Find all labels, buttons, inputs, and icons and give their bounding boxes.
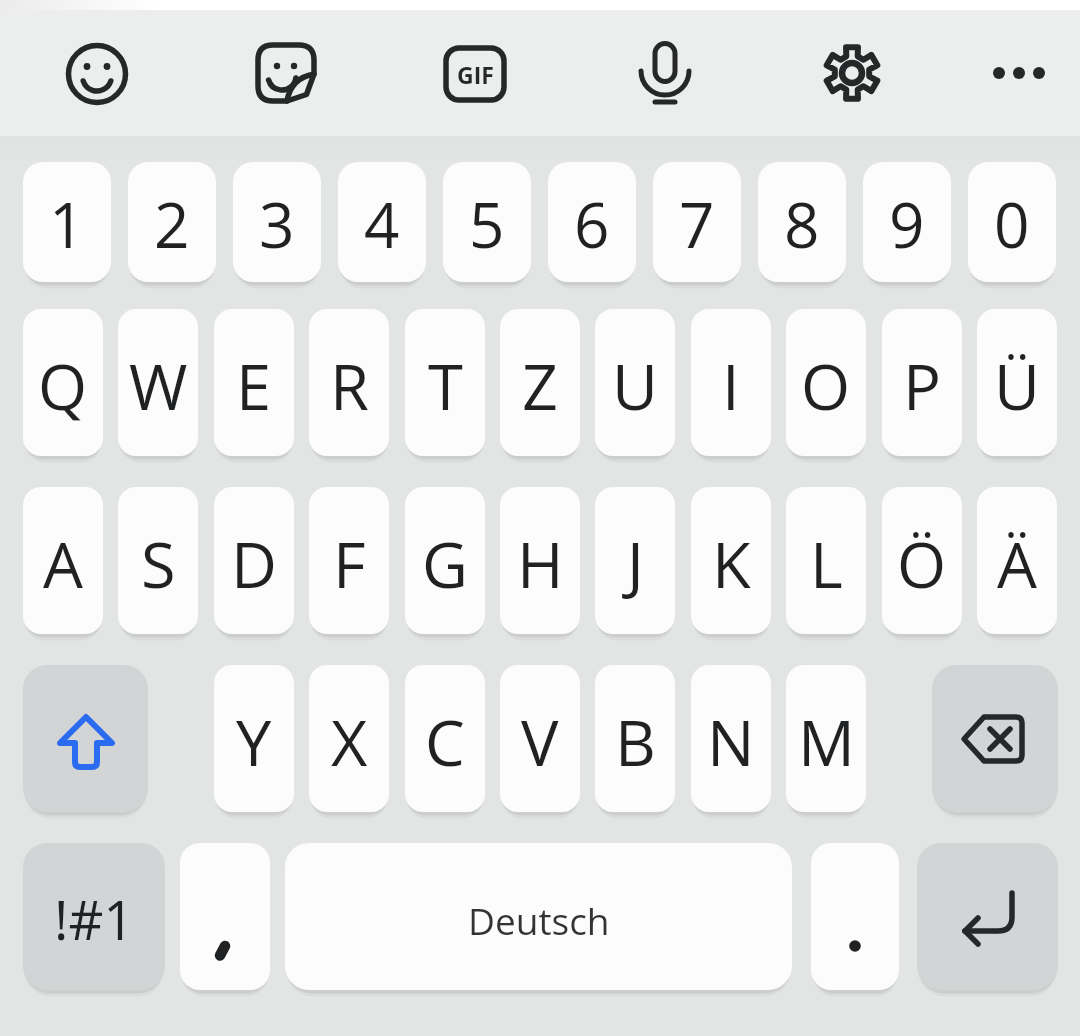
staticText: G (422, 521, 468, 607)
button[interactable] (811, 843, 899, 990)
button[interactable]: B (595, 665, 675, 812)
staticText: C (425, 699, 465, 785)
staticText: 0 (994, 182, 1030, 266)
button[interactable]: G (405, 487, 485, 634)
staticText: D (231, 521, 277, 607)
button[interactable]: Y (214, 665, 294, 812)
staticText: B (615, 699, 656, 785)
button[interactable]: H (500, 487, 580, 634)
button[interactable]: R (309, 309, 389, 456)
button[interactable]: C (405, 665, 485, 812)
button[interactable]: W (118, 309, 198, 456)
staticText: O (801, 343, 851, 429)
staticText: 1 (49, 182, 85, 266)
staticText: 9 (889, 182, 925, 266)
button[interactable]: 8 (758, 162, 846, 282)
button[interactable] (932, 665, 1058, 812)
staticText: L (810, 521, 843, 607)
button[interactable]: GIF (443, 45, 507, 103)
button[interactable] (23, 665, 148, 812)
button[interactable]: !#1 (23, 843, 165, 990)
button[interactable]: E (214, 309, 294, 456)
button[interactable] (820, 41, 884, 105)
staticText: P (903, 343, 941, 429)
staticText: T (428, 343, 463, 429)
staticText: H (517, 521, 564, 607)
button[interactable]: 9 (863, 162, 951, 282)
button[interactable] (987, 41, 1051, 105)
staticText: V (521, 699, 559, 785)
button[interactable]: X (309, 665, 389, 812)
button[interactable]: Ö (882, 487, 962, 634)
button[interactable]: Z (500, 309, 580, 456)
staticText: K (712, 521, 751, 607)
staticText: F (333, 521, 366, 607)
staticText: I (722, 343, 740, 429)
button[interactable]: T (405, 309, 485, 456)
button[interactable] (180, 843, 270, 990)
button[interactable]: J (595, 487, 675, 634)
button[interactable] (917, 843, 1058, 990)
staticText: 5 (469, 182, 505, 266)
button[interactable]: Q (23, 309, 103, 456)
button[interactable]: K (691, 487, 771, 634)
button[interactable]: 7 (653, 162, 741, 282)
staticText: E (236, 343, 272, 429)
staticText: !#1 (54, 882, 135, 956)
staticText: 3 (259, 182, 295, 266)
button[interactable]: U (595, 309, 675, 456)
staticText: W (129, 343, 188, 429)
staticText: U (612, 343, 658, 429)
staticText: Y (236, 699, 272, 785)
button[interactable]: D (214, 487, 294, 634)
staticText: Z (522, 343, 558, 429)
staticText: 4 (364, 182, 400, 266)
button[interactable]: 6 (548, 162, 636, 282)
staticText: Q (38, 343, 88, 429)
staticText: Deutsch (468, 895, 610, 945)
button[interactable]: Deutsch (285, 843, 792, 990)
staticText: 7 (679, 182, 715, 266)
staticText: X (331, 699, 368, 785)
button[interactable]: 1 (23, 162, 111, 282)
button[interactable]: V (500, 665, 580, 812)
button[interactable]: N (691, 665, 771, 812)
button[interactable]: L (786, 487, 866, 634)
staticText: GIF (457, 59, 494, 90)
button[interactable] (254, 41, 318, 105)
button[interactable]: 3 (233, 162, 321, 282)
staticText: 8 (784, 182, 820, 266)
staticText: Ä (997, 521, 1037, 607)
staticText: S (141, 521, 176, 607)
staticText: M (798, 699, 855, 785)
button[interactable]: I (691, 309, 771, 456)
button[interactable]: M (786, 665, 866, 812)
button[interactable]: A (23, 487, 103, 634)
staticText: 2 (154, 182, 190, 266)
button[interactable] (64, 41, 130, 107)
button[interactable]: P (882, 309, 962, 456)
button[interactable] (633, 41, 697, 105)
button[interactable]: Ä (977, 487, 1057, 634)
staticText: J (627, 521, 644, 607)
button[interactable]: 4 (338, 162, 426, 282)
staticText: Ö (897, 521, 947, 607)
button[interactable]: S (118, 487, 198, 634)
staticText: R (330, 343, 369, 429)
staticText: A (43, 521, 83, 607)
staticText: N (707, 699, 755, 785)
button[interactable]: 5 (443, 162, 531, 282)
button[interactable]: Ü (977, 309, 1057, 456)
staticText: Ü (994, 343, 1040, 429)
button[interactable]: F (309, 487, 389, 634)
staticText: 6 (574, 182, 610, 266)
button[interactable]: 2 (128, 162, 216, 282)
button[interactable]: 0 (968, 162, 1056, 282)
button[interactable]: O (786, 309, 866, 456)
